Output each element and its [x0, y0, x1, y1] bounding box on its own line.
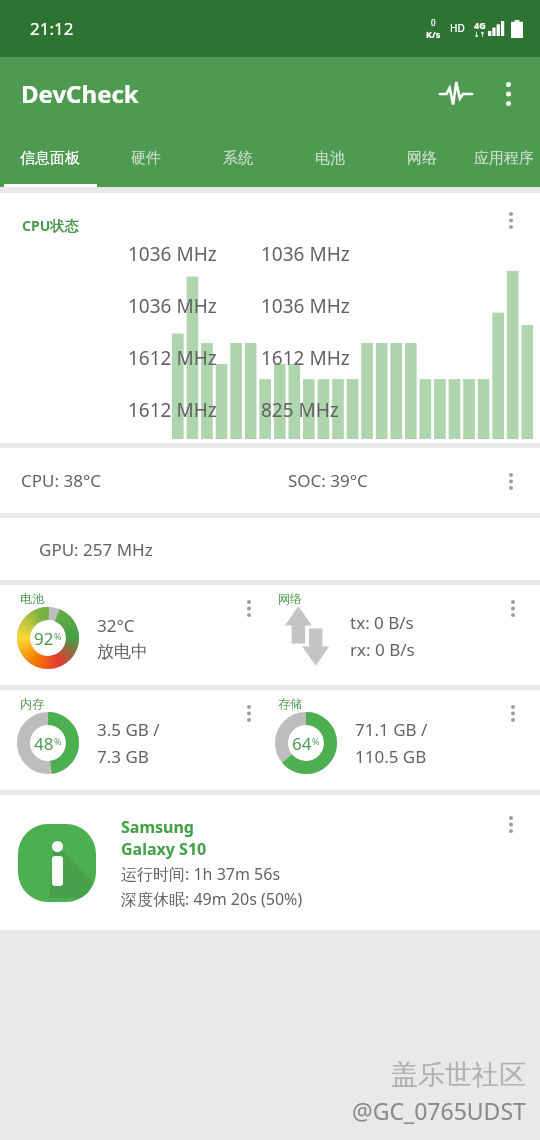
- staticText: 1036 MHz: [261, 293, 350, 319]
- staticText: 1036 MHz: [261, 241, 350, 267]
- staticText: 存储: [278, 696, 302, 711]
- button[interactable]: 内存: [0, 690, 270, 790]
- staticText: 信息面板: [20, 149, 80, 168]
- staticText: 电池: [315, 149, 345, 168]
- button[interactable]: More options: [492, 692, 534, 734]
- staticText: 网络: [407, 149, 437, 168]
- staticText: 盖乐世社区: [391, 1058, 526, 1092]
- staticText: 系统: [223, 149, 253, 168]
- staticText: DevCheck: [21, 77, 139, 110]
- button[interactable]: More options: [490, 803, 532, 845]
- staticText: 内存: [20, 696, 44, 711]
- button[interactable]: GPU: 257 MHz: [0, 518, 540, 580]
- button[interactable]: 信息面板: [0, 130, 100, 187]
- staticText: 放电中: [97, 641, 148, 662]
- button[interactable]: CPU: 38°C: [0, 448, 540, 513]
- staticText: 1036 MHz: [128, 241, 217, 267]
- button[interactable]: 硬件: [100, 130, 192, 187]
- staticText: 7.3 GB: [97, 745, 149, 768]
- button[interactable]: More options: [228, 587, 270, 629]
- staticText: %: [312, 735, 320, 747]
- button[interactable]: 电池: [0, 585, 270, 685]
- staticText: Galaxy S10: [121, 838, 207, 860]
- staticText: 48: [34, 732, 54, 755]
- staticText: 硬件: [131, 149, 161, 168]
- button[interactable]: Monitor: [430, 68, 482, 120]
- button[interactable]: 网络: [270, 585, 540, 685]
- staticText: 运行时间: 1h 37m 56s: [121, 863, 281, 885]
- staticText: 21:12: [30, 17, 74, 40]
- staticText: CPU: 38°C: [21, 469, 101, 492]
- staticText: 1612 MHz: [261, 345, 350, 371]
- staticText: tx: 0 B/s: [350, 611, 414, 634]
- button[interactable]: More options: [228, 692, 270, 734]
- staticText: 0: [431, 17, 436, 28]
- staticText: 3.5 GB /: [97, 718, 160, 741]
- staticText: 32°C: [97, 614, 135, 637]
- staticText: K/s: [426, 28, 441, 40]
- staticText: 1036 MHz: [128, 293, 217, 319]
- button[interactable]: CPU状态: [0, 193, 540, 443]
- staticText: Samsung: [121, 816, 194, 838]
- button[interactable]: Samsung: [0, 795, 540, 930]
- button[interactable]: 系统: [192, 130, 284, 187]
- staticText: 深度休眠: 49m 20s (50%): [121, 888, 303, 910]
- staticText: %: [54, 735, 62, 747]
- staticText: 110.5 GB: [355, 745, 427, 768]
- button[interactable]: More options: [490, 199, 532, 241]
- staticText: ↓↑: [474, 31, 486, 39]
- button[interactable]: 电池: [284, 130, 376, 187]
- staticText: 网络: [278, 591, 302, 606]
- staticText: 电池: [20, 591, 44, 606]
- staticText: @GC_0765UDST: [352, 1095, 526, 1126]
- button[interactable]: 存储: [270, 690, 540, 790]
- button[interactable]: More options: [482, 68, 534, 120]
- staticText: rx: 0 B/s: [350, 638, 415, 661]
- staticText: HD: [450, 21, 465, 35]
- staticText: GPU: 257 MHz: [39, 538, 153, 561]
- staticText: 1612 MHz: [128, 345, 217, 371]
- staticText: 1612 MHz: [128, 397, 217, 423]
- staticText: CPU状态: [22, 216, 79, 235]
- staticText: 应用程序: [474, 149, 534, 168]
- button[interactable]: More options: [490, 460, 532, 502]
- staticText: SOC: 39°C: [288, 469, 368, 492]
- button[interactable]: More options: [492, 587, 534, 629]
- staticText: 64: [292, 732, 312, 755]
- button[interactable]: 网络: [376, 130, 468, 187]
- staticText: 92: [34, 627, 54, 650]
- staticText: %: [54, 630, 62, 642]
- button[interactable]: 应用程序: [468, 130, 540, 187]
- staticText: 825 MHz: [261, 397, 339, 423]
- staticText: 4G: [474, 19, 486, 31]
- staticText: 71.1 GB /: [355, 718, 428, 741]
